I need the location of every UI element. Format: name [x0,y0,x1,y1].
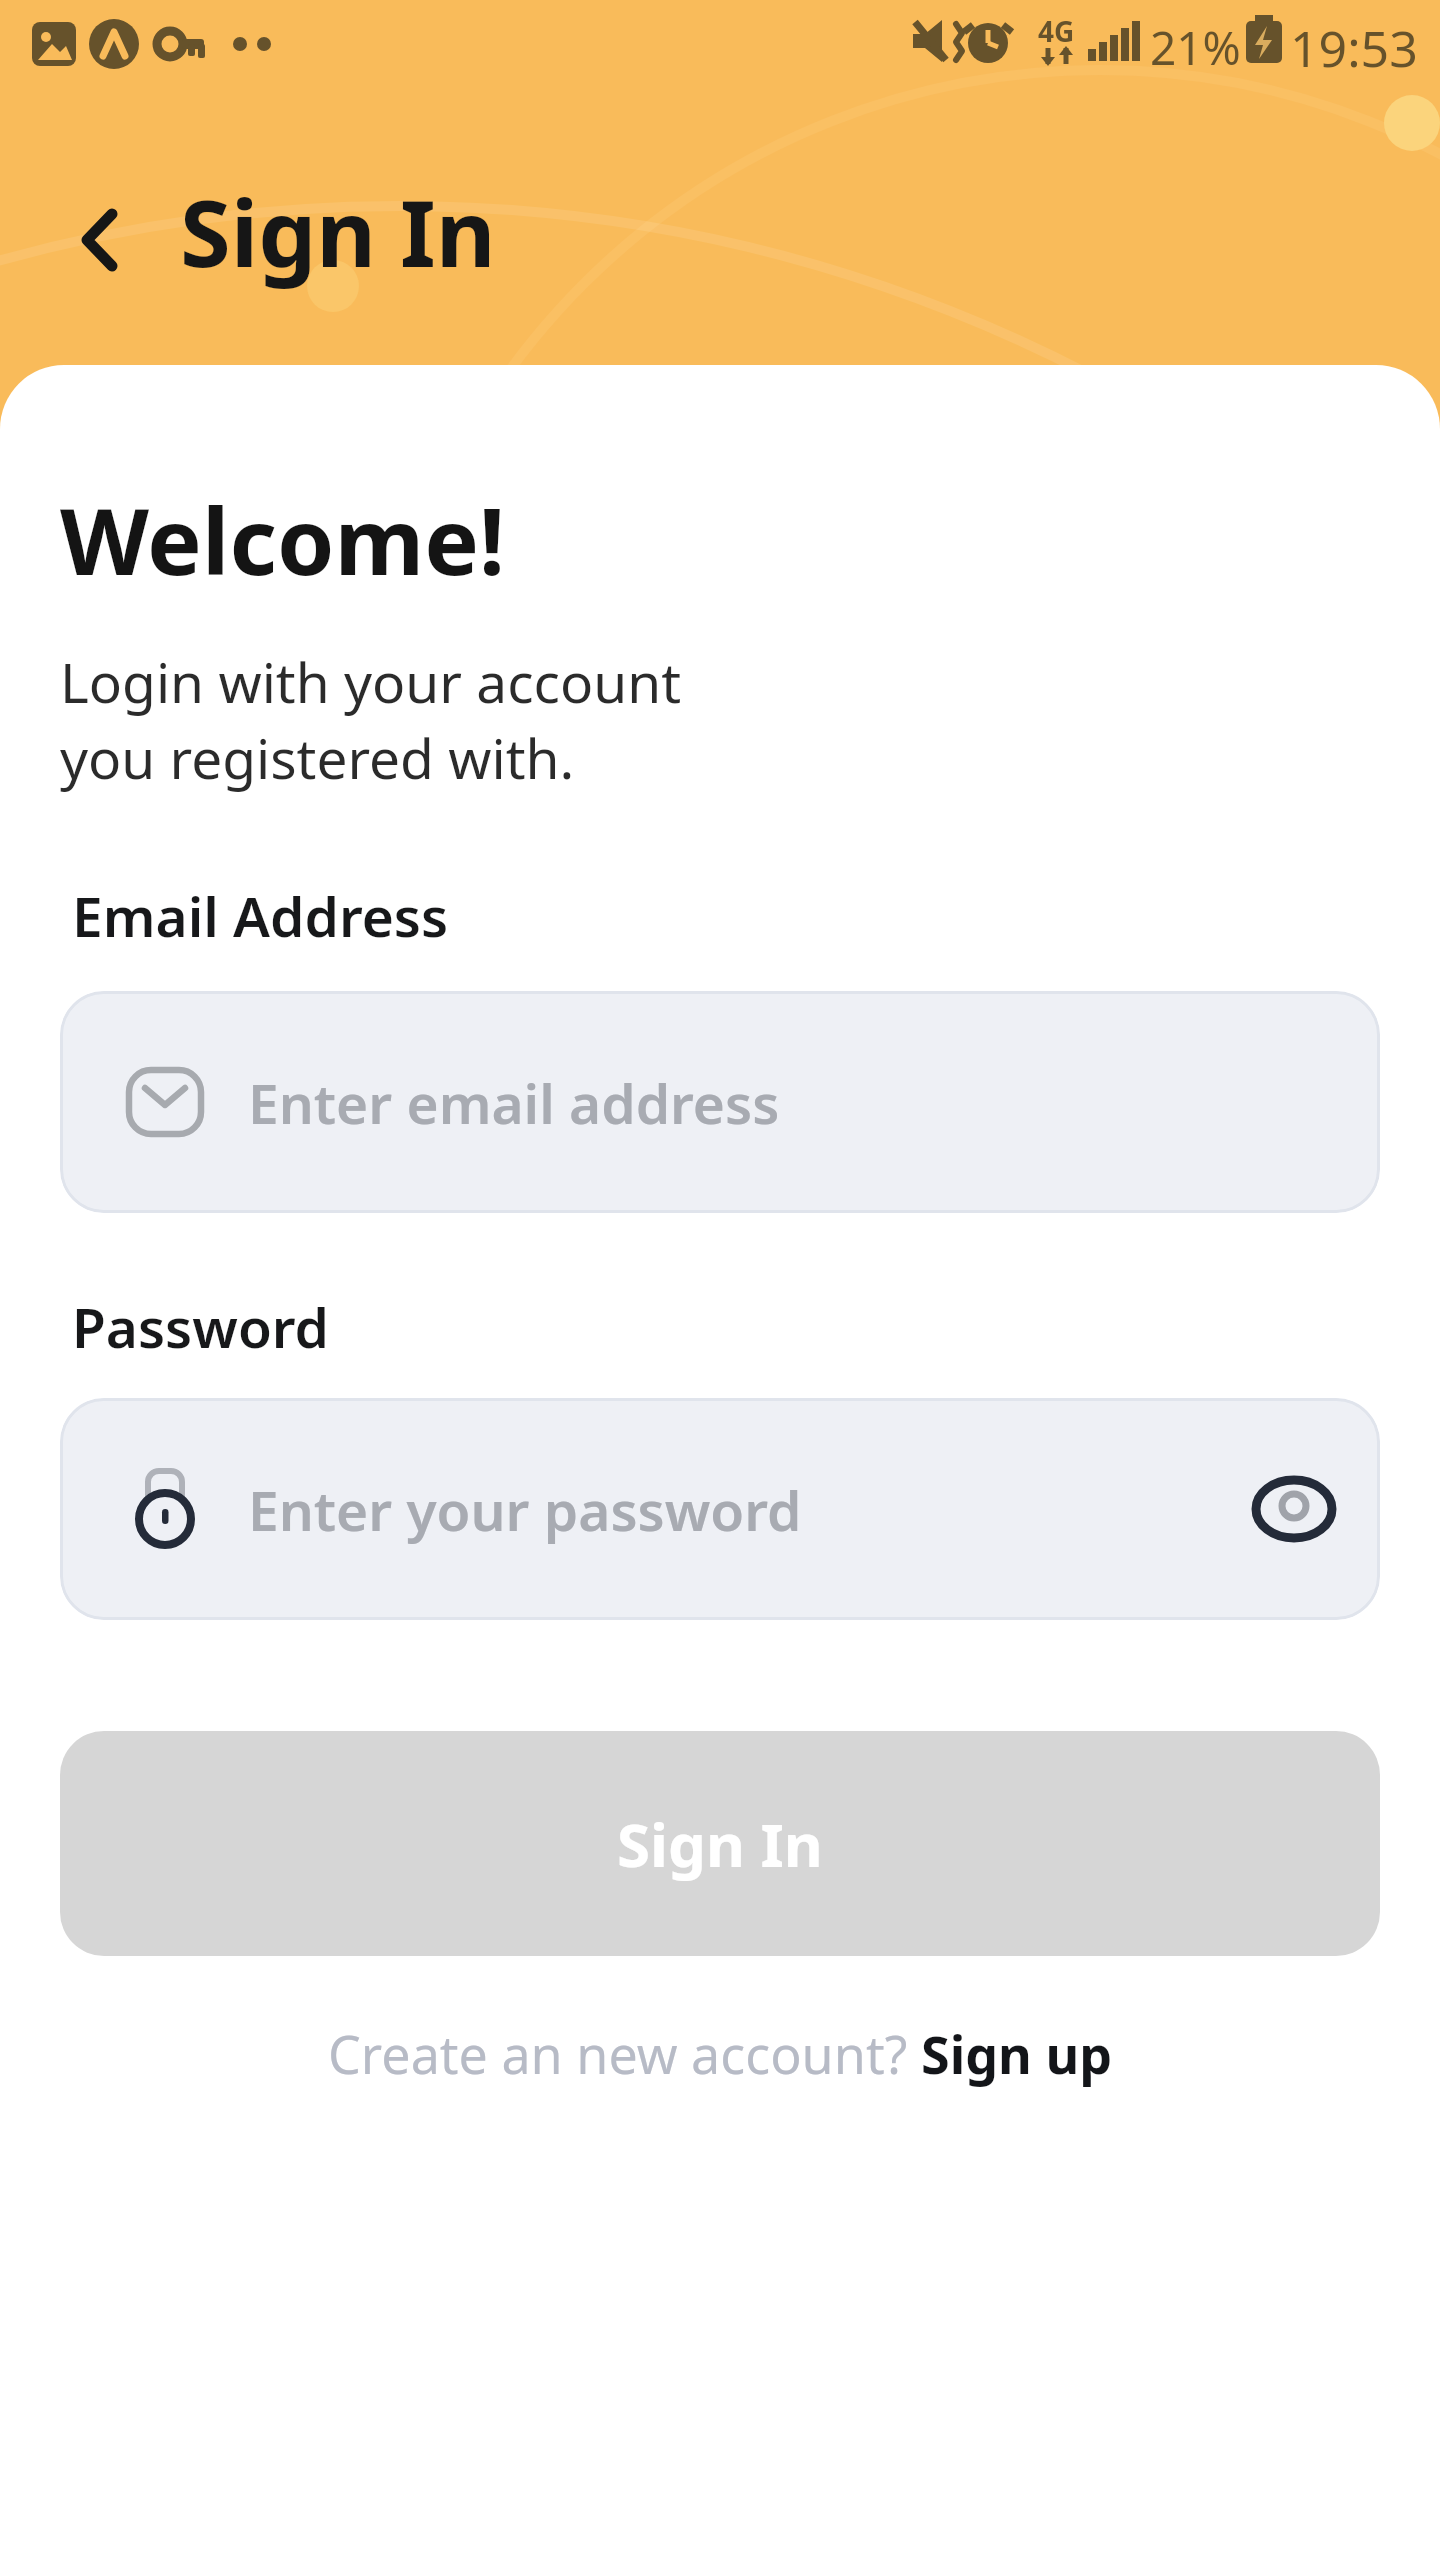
staticText: Sign In [180,169,496,294]
staticText: Email Address [72,878,449,953]
button[interactable] [60,200,140,280]
staticText: Welcome! [60,477,506,602]
staticText: Password [72,1289,330,1364]
button[interactable]: Sign In [60,1731,1380,1956]
button[interactable]: Enter your password [60,1398,1380,1620]
staticText: Sign up [921,2018,1113,2089]
staticText: Enter your password [248,1472,802,1547]
staticText: 19:53 [1290,14,1418,82]
staticText: Create an new account? [328,2018,921,2089]
staticText: 4G [1038,12,1075,50]
staticText: Sign In [617,1803,823,1885]
staticText: Enter email address [248,1065,780,1140]
staticText: 21% [1150,16,1241,79]
staticText: Login with your account you registered w… [60,644,682,796]
button[interactable]: Enter email address [60,991,1380,1213]
button[interactable]: Create an new account? [60,2018,1380,2089]
